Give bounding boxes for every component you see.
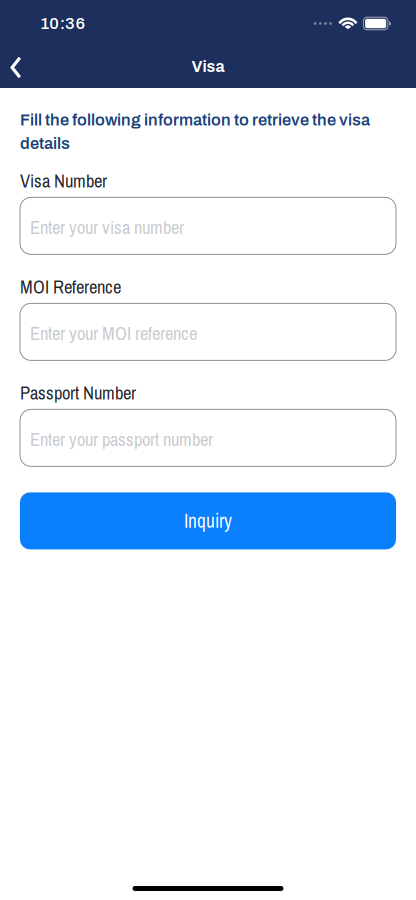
staticText: Visa Number: [20, 168, 107, 193]
staticText: Passport Number: [20, 380, 136, 405]
staticText: Inquiry: [184, 508, 232, 534]
staticText: Enter your visa number: [30, 215, 184, 240]
button[interactable]: Enter your MOI reference: [20, 303, 396, 360]
staticText: Fill the following information to retrie…: [20, 111, 370, 152]
staticText: 10:36: [40, 14, 85, 32]
staticText: MOI Reference: [20, 274, 121, 299]
button[interactable]: Enter your visa number: [20, 197, 396, 254]
staticText: Enter your passport number: [30, 427, 213, 452]
staticText: Visa: [191, 58, 224, 75]
button[interactable]: Inquiry: [20, 492, 396, 549]
staticText: Enter your MOI reference: [30, 321, 197, 346]
button[interactable]: Enter your passport number: [20, 409, 396, 466]
button[interactable]: Back: [0, 44, 32, 88]
